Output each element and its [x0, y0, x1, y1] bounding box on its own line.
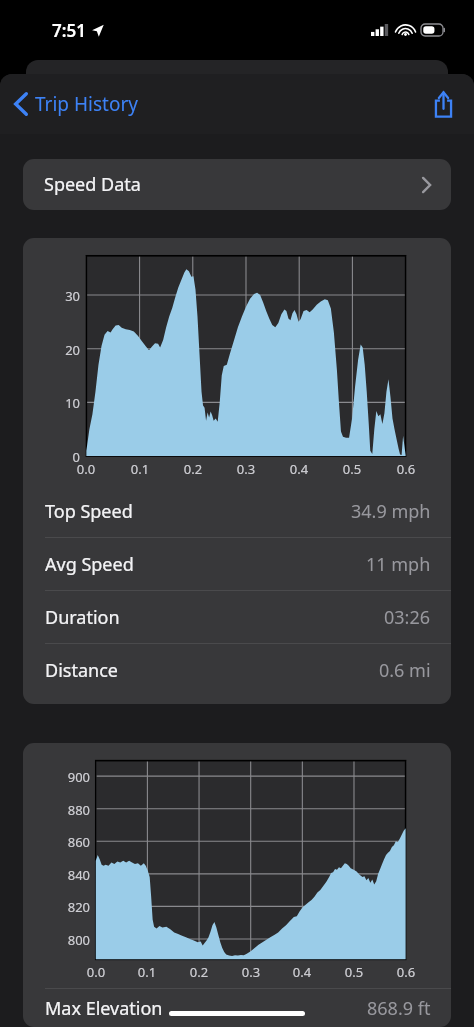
staticText: 30 — [44, 287, 80, 305]
staticText: 0 — [44, 448, 80, 466]
staticText: 868.9 ft — [367, 996, 431, 1021]
staticText: 0.3 — [230, 460, 262, 478]
staticText: 0.4 — [286, 963, 318, 981]
staticText: Duration — [45, 605, 120, 630]
staticText: 0.2 — [183, 963, 215, 981]
staticText: 800 — [54, 931, 90, 949]
staticText: 0.6 — [390, 963, 422, 981]
staticText: Speed Data — [44, 172, 141, 197]
staticText: Trip History — [35, 91, 138, 117]
button[interactable]: Speed Data — [23, 159, 451, 210]
staticText: 0.0 — [80, 963, 112, 981]
staticText: Max Elevation — [45, 996, 163, 1021]
button[interactable]: Trip History — [0, 83, 148, 125]
button[interactable]: Distance — [23, 644, 451, 696]
button[interactable]: Top Speed — [23, 485, 451, 537]
staticText: 0.6 — [390, 460, 422, 478]
staticText: Avg Speed — [45, 552, 134, 577]
staticText: 0.0 — [70, 460, 102, 478]
staticText: 840 — [54, 866, 90, 884]
staticText: 11 mph — [366, 552, 431, 577]
staticText: Distance — [45, 658, 118, 683]
staticText: Top Speed — [45, 499, 133, 524]
staticText: 860 — [54, 833, 90, 851]
staticText: 0.2 — [177, 460, 209, 478]
staticText: 0.5 — [338, 963, 370, 981]
staticText: 20 — [44, 341, 80, 359]
button[interactable]: Max Elevation — [23, 989, 451, 1027]
button[interactable]: Share — [427, 85, 460, 124]
staticText: 34.9 mph — [351, 499, 431, 524]
button[interactable]: Avg Speed — [23, 538, 451, 590]
staticText: 0.6 mi — [379, 658, 431, 683]
staticText: 10 — [44, 394, 80, 412]
staticText: 900 — [54, 768, 90, 786]
staticText: 0.5 — [336, 460, 368, 478]
staticText: 0.4 — [283, 460, 315, 478]
staticText: 03:26 — [384, 605, 431, 630]
staticText: 880 — [54, 801, 90, 819]
button[interactable]: Duration — [23, 591, 451, 643]
staticText: 7:51 — [52, 19, 86, 42]
staticText: 820 — [54, 898, 90, 916]
staticText: 0.1 — [124, 460, 156, 478]
staticText: 0.3 — [235, 963, 267, 981]
staticText: 0.1 — [131, 963, 163, 981]
